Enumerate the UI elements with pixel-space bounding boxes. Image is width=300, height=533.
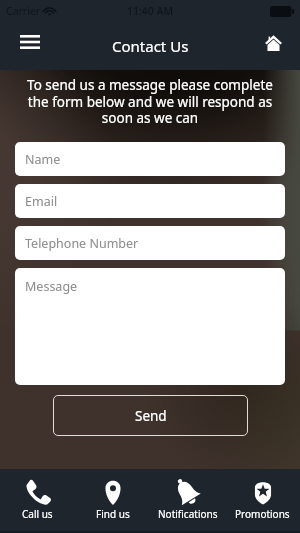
button[interactable]: Name <box>15 142 285 176</box>
staticText: Call us <box>22 507 53 521</box>
staticText: Find us <box>96 507 130 521</box>
staticText: Contact Us <box>112 36 189 56</box>
button[interactable]: Home <box>251 24 295 68</box>
staticText: Telephone Number <box>25 235 139 252</box>
button[interactable]: Promotions <box>225 469 300 531</box>
staticText: Carrier <box>6 4 41 18</box>
staticText: Message <box>25 278 78 295</box>
staticText: Email <box>25 193 58 210</box>
staticText: Promotions <box>235 507 290 521</box>
staticText: To send us a message please complete the… <box>12 76 288 127</box>
button[interactable]: Notifications <box>150 469 225 531</box>
button[interactable]: Message <box>15 268 285 385</box>
button[interactable]: Telephone Number <box>15 226 285 260</box>
button[interactable]: Email <box>15 184 285 218</box>
staticText: Notifications <box>158 507 218 521</box>
button[interactable]: Send <box>53 395 248 436</box>
button[interactable]: Call us <box>0 469 75 531</box>
staticText: 11:40 AM <box>127 4 174 18</box>
button[interactable]: Menu <box>8 24 52 68</box>
staticText: Name <box>25 151 61 168</box>
button[interactable]: Find us <box>75 469 150 531</box>
staticText: Send <box>135 407 167 425</box>
